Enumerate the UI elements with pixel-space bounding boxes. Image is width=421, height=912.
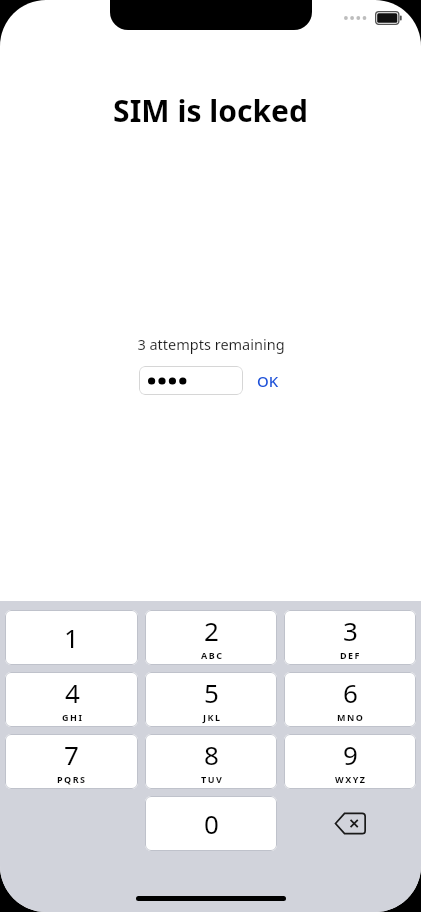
staticText: SIM is locked bbox=[0, 90, 421, 131]
button[interactable]: 0 bbox=[145, 796, 277, 851]
staticText: J K L bbox=[203, 711, 220, 723]
button[interactable]: 5 bbox=[145, 672, 277, 727]
staticText: A B C bbox=[201, 649, 222, 661]
button[interactable]: 6 bbox=[284, 672, 416, 727]
staticText: W X Y Z bbox=[335, 773, 366, 785]
staticText: OK bbox=[257, 371, 279, 391]
staticText: 3 bbox=[343, 613, 358, 648]
staticText: 0 bbox=[204, 806, 219, 841]
button[interactable]: 4 bbox=[5, 672, 138, 727]
button[interactable]: 2 bbox=[145, 610, 277, 665]
staticText: 4 bbox=[65, 675, 80, 710]
staticText: 6 bbox=[343, 675, 358, 710]
staticText: 5 bbox=[204, 675, 219, 710]
staticText: 8 bbox=[204, 737, 219, 772]
button[interactable]: Backspace bbox=[284, 796, 416, 851]
staticText: 9 bbox=[343, 737, 358, 772]
staticText: 3 attempts remaining bbox=[137, 334, 285, 354]
button[interactable]: 3 bbox=[284, 610, 416, 665]
staticText: M N O bbox=[337, 711, 363, 723]
staticText: T U V bbox=[201, 773, 222, 785]
staticText: G H I bbox=[62, 711, 82, 723]
staticText: D E F bbox=[340, 649, 360, 661]
button[interactable]: 7 bbox=[5, 734, 138, 789]
button[interactable]: PIN entry field bbox=[139, 366, 243, 395]
button[interactable]: 9 bbox=[284, 734, 416, 789]
staticText: P Q R S bbox=[57, 773, 86, 785]
button[interactable]: OK bbox=[253, 368, 283, 394]
staticText: 2 bbox=[204, 613, 219, 648]
button[interactable]: 8 bbox=[145, 734, 277, 789]
staticText: 1 bbox=[64, 620, 79, 655]
staticText: 7 bbox=[64, 737, 79, 772]
button[interactable]: 1 bbox=[5, 610, 138, 665]
